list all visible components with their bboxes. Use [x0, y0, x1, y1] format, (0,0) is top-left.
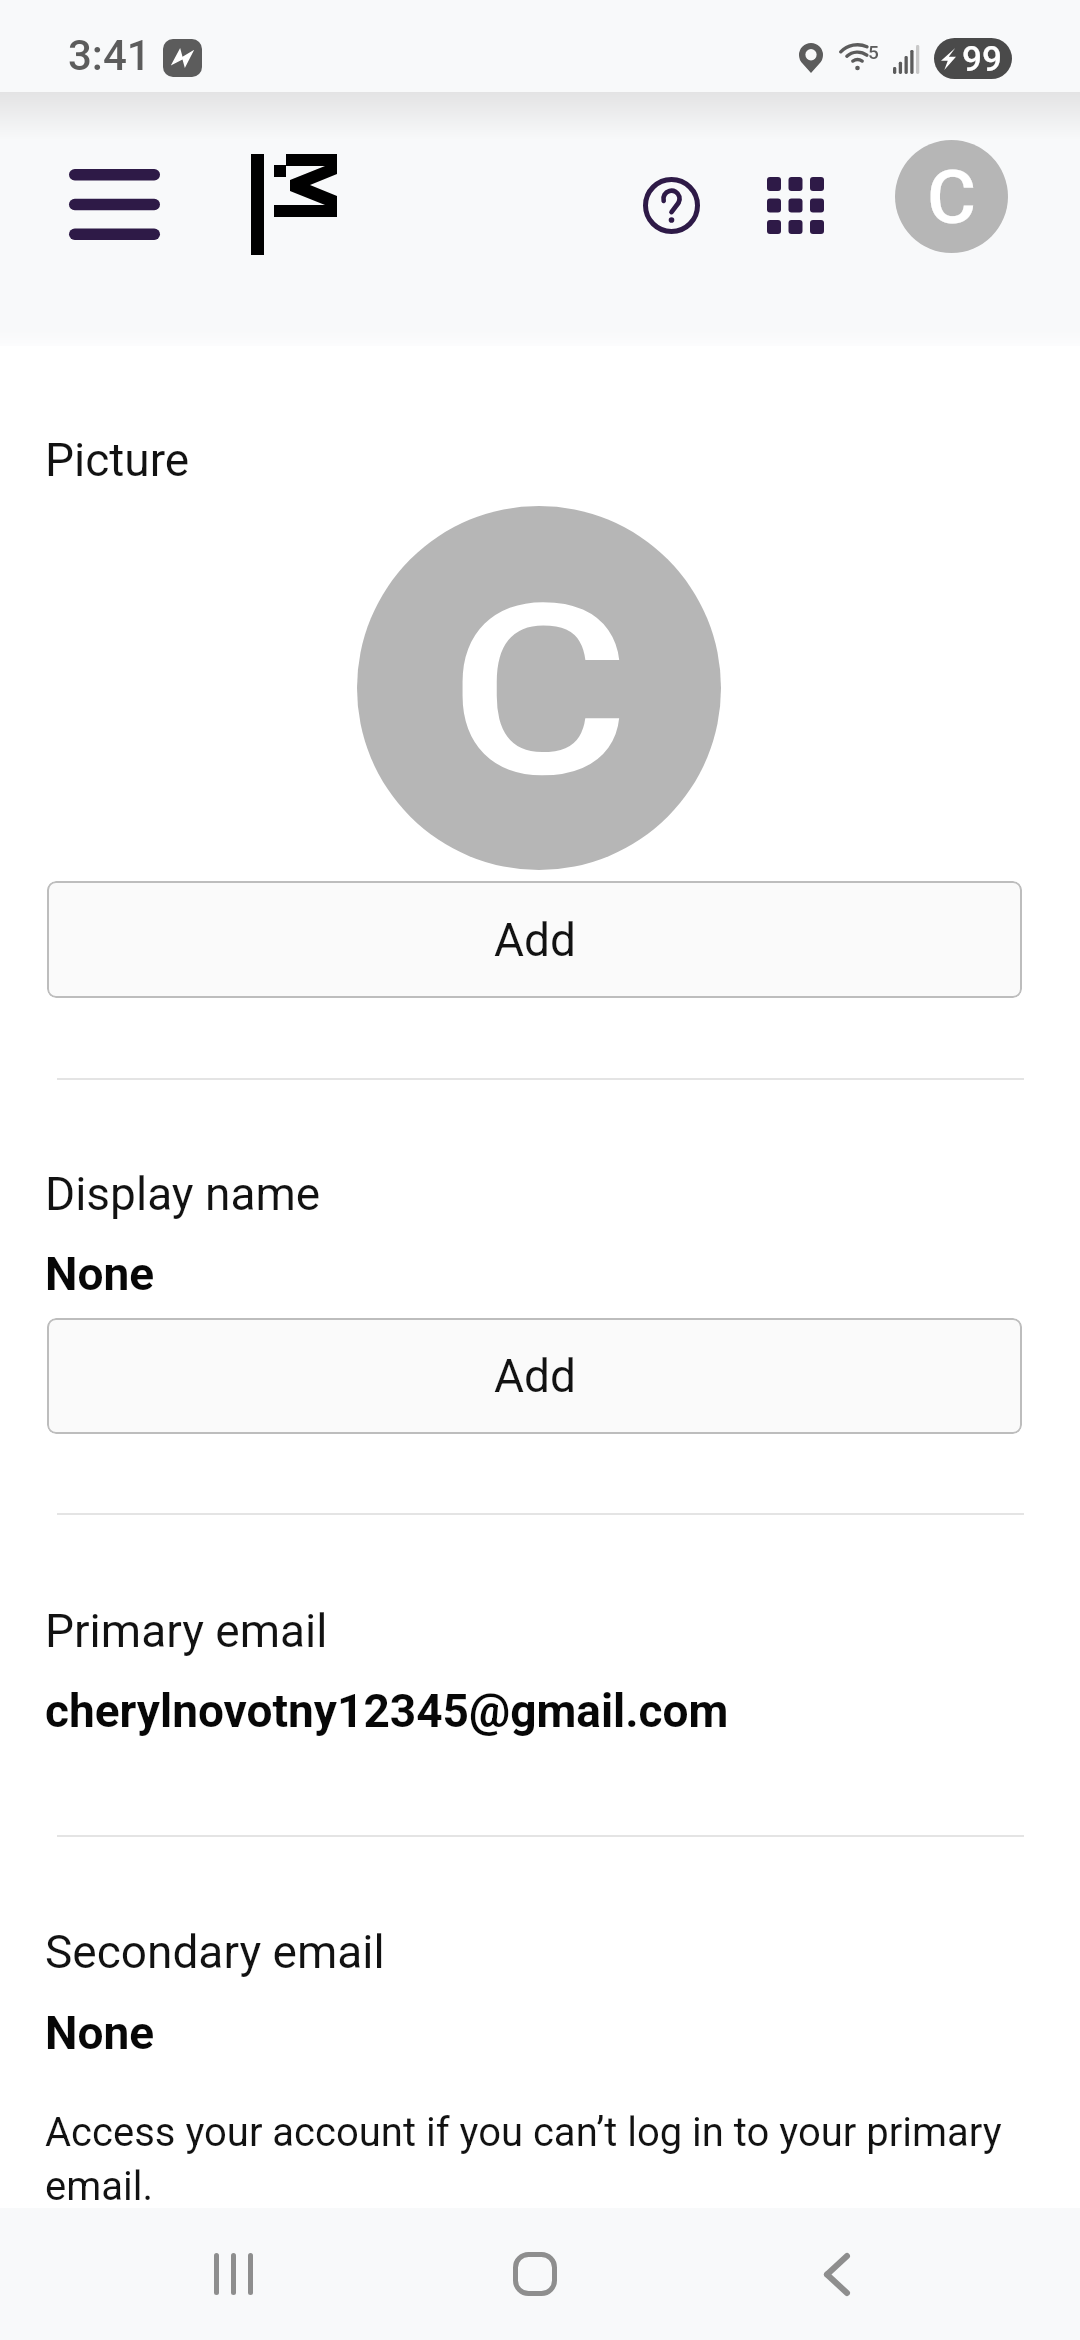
button[interactable]: Add [47, 881, 1022, 998]
staticText: 5 [868, 41, 879, 63]
button[interactable]: Home [464, 2214, 606, 2334]
button[interactable]: Google Account [895, 140, 1008, 253]
button[interactable]: Main menu [29, 124, 200, 284]
staticText: C [927, 153, 976, 241]
staticText: Add [494, 913, 576, 967]
button[interactable]: Help [611, 145, 731, 265]
staticText: Access your account if you can’t log in … [45, 2109, 1035, 2210]
staticText: 3:41 [68, 31, 151, 80]
staticText: Primary email [45, 1604, 328, 1658]
button[interactable]: Back [766, 2214, 908, 2334]
staticText: None [45, 1247, 155, 1301]
staticText: Secondary email [45, 1925, 385, 1979]
staticText: C [449, 553, 630, 831]
button[interactable]: Google apps [735, 145, 855, 265]
staticText: None [45, 2006, 155, 2060]
staticText: cherylnovotny12345@gmail.com [45, 1684, 729, 1738]
staticText: Picture [45, 433, 190, 487]
button[interactable]: Add [47, 1318, 1022, 1434]
staticText: Display name [45, 1167, 321, 1221]
staticText: 99 [962, 39, 1002, 79]
staticText: Add [494, 1349, 576, 1403]
button[interactable]: Recent apps [162, 2214, 304, 2334]
